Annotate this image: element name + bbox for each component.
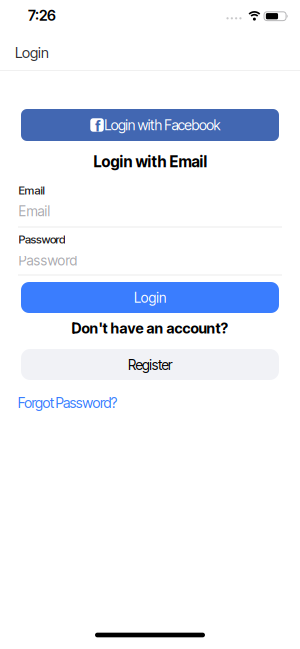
staticText: Email <box>18 203 50 220</box>
secureTextField[interactable]: Password <box>18 252 77 269</box>
staticText: Login <box>15 44 49 62</box>
button[interactable]: Register <box>21 349 279 380</box>
staticText: Don't have an account? <box>71 320 228 337</box>
button[interactable]: Login <box>21 282 279 313</box>
textField[interactable]: Email <box>18 203 50 220</box>
staticText: Email <box>18 183 44 197</box>
staticText: Login with Email <box>93 153 207 171</box>
staticText: Login with Facebook <box>104 116 221 133</box>
staticText: Password <box>18 232 66 246</box>
staticText: Register <box>128 357 172 373</box>
staticText: Login <box>134 289 166 306</box>
staticText: Forgot Password? <box>18 394 118 411</box>
staticText: f <box>95 117 100 135</box>
staticText: Password <box>18 252 77 269</box>
button[interactable]: f <box>21 109 279 141</box>
staticText: 7:26 <box>28 7 56 24</box>
button[interactable]: Forgot Password? <box>18 394 118 411</box>
